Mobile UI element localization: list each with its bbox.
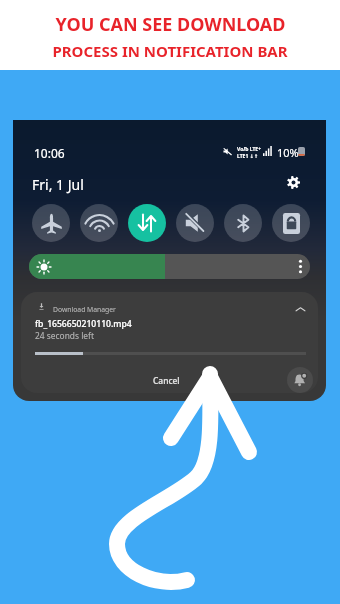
button[interactable]: Wi-Fi bbox=[80, 204, 118, 242]
button[interactable]: Sound off bbox=[176, 204, 214, 242]
staticText: 10% bbox=[277, 145, 299, 160]
staticText: LTE1 ↓↑ bbox=[237, 153, 258, 160]
staticText: YOU CAN SEE DOWNLOAD bbox=[55, 12, 286, 37]
button[interactable]: Cancel bbox=[139, 370, 194, 391]
staticText: fb_1656650210110.mp4 bbox=[35, 318, 132, 330]
button[interactable]: Auto rotate bbox=[272, 204, 310, 242]
staticText: Fri, 1 Jul bbox=[32, 175, 84, 194]
staticText: Download Manager bbox=[53, 305, 116, 314]
staticText: Cancel bbox=[153, 375, 180, 386]
button[interactable]: Collapse bbox=[289, 298, 311, 320]
button[interactable]: Airplane mode bbox=[32, 204, 70, 242]
staticText: VoЉ LTE+ bbox=[237, 146, 261, 153]
staticText: 24 seconds left bbox=[35, 330, 94, 341]
button[interactable]: Brightness bbox=[29, 254, 310, 279]
button[interactable]: Mobile data bbox=[128, 204, 166, 242]
button[interactable]: Settings bbox=[279, 168, 307, 196]
staticText: PROCESS IN NOTIFICATION BAR bbox=[52, 41, 288, 61]
button[interactable]: Notification settings bbox=[287, 367, 313, 393]
button[interactable]: Bluetooth bbox=[224, 204, 262, 242]
staticText: 10:06 bbox=[34, 145, 65, 161]
